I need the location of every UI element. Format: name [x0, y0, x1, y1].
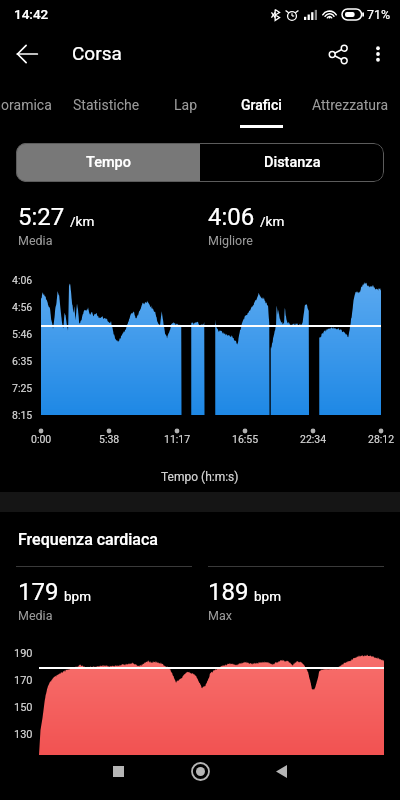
staticText: Statistiche — [73, 97, 140, 113]
staticText: Tempo — [86, 154, 131, 171]
staticText: Max — [208, 608, 232, 623]
staticText: 14:42 — [14, 6, 49, 22]
staticText: Lap — [174, 97, 198, 113]
staticText: Tempo (h:m:s) — [161, 470, 239, 484]
button[interactable]: Statistiche — [46, 82, 166, 128]
staticText: /km — [70, 213, 95, 229]
button[interactable]: Attrezzatura — [290, 82, 400, 128]
button[interactable]: More options — [356, 32, 400, 76]
staticText: Attrezzatura — [312, 97, 389, 113]
staticText: 189 — [208, 578, 249, 606]
staticText: Grafici — [241, 97, 282, 113]
staticText: bpm — [64, 588, 91, 604]
staticText: 8:15 — [12, 409, 33, 421]
staticText: 28:12 — [368, 433, 395, 445]
staticText: 179 — [18, 578, 59, 606]
staticText: Migliore — [208, 233, 253, 248]
button[interactable]: Share — [316, 32, 360, 76]
button[interactable]: Lap — [126, 82, 246, 128]
button[interactable]: Home — [176, 749, 224, 794]
button[interactable]: Grafici — [201, 82, 321, 128]
staticText: 16:55 — [232, 433, 259, 445]
staticText: 130 — [14, 728, 33, 741]
staticText: 5:38 — [99, 433, 120, 445]
staticText: 7:25 — [12, 382, 33, 394]
button[interactable]: Distanza — [200, 143, 384, 182]
staticText: 6:35 — [12, 355, 33, 367]
staticText: Media — [18, 608, 53, 623]
staticText: 0:00 — [31, 433, 52, 445]
staticText: 4:06 — [12, 274, 33, 286]
staticText: Distanza — [264, 154, 321, 171]
button[interactable]: Back — [257, 749, 305, 794]
staticText: 170 — [14, 674, 33, 687]
staticText: Corsa — [72, 42, 122, 64]
staticText: Media — [18, 233, 53, 248]
button[interactable]: Panoramica — [0, 82, 74, 128]
staticText: Panoramica — [0, 97, 52, 113]
staticText: 4:56 — [12, 301, 33, 313]
staticText: 71% — [367, 7, 391, 22]
staticText: 5:27 — [18, 203, 65, 231]
button[interactable]: Back — [6, 33, 48, 75]
staticText: 190 — [14, 647, 33, 660]
staticText: 150 — [14, 701, 33, 714]
button[interactable]: Recent apps — [94, 749, 142, 794]
button[interactable]: Tempo — [16, 143, 200, 182]
staticText: 4:06 — [208, 203, 255, 231]
staticText: 5:46 — [12, 328, 33, 340]
staticText: bpm — [254, 588, 281, 604]
staticText: 11:17 — [164, 433, 191, 445]
staticText: /km — [260, 213, 285, 229]
staticText: Frequenza cardiaca — [18, 530, 158, 549]
staticText: 22:34 — [300, 433, 327, 445]
